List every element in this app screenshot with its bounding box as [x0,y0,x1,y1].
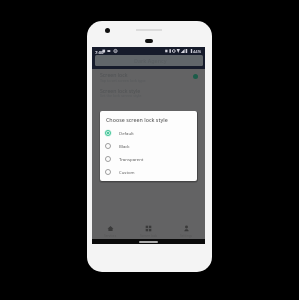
staticText: Black [119,143,130,149]
staticText: Transparent [119,156,144,162]
staticText: Screen lock [100,71,128,78]
button[interactable]: Services [92,219,129,239]
button[interactable]: Transparent [100,152,197,165]
staticText: Default [119,130,134,136]
staticText: Custom [119,169,135,175]
button[interactable] [92,69,205,84]
staticText: 7:00 [95,49,104,55]
staticText: 44% [193,49,202,55]
button[interactable]: Screen lock [129,219,167,239]
staticText: Choose screen lock style [106,116,168,123]
button[interactable]: Default [100,126,197,139]
button[interactable]: Custom [100,165,197,178]
staticText: Screen lock style [100,87,141,94]
other: Screen lock [145,225,152,232]
button[interactable]: Black [100,139,197,152]
button[interactable]: Settings [167,219,205,239]
other: Settings [183,225,190,232]
other: Services [107,225,114,232]
